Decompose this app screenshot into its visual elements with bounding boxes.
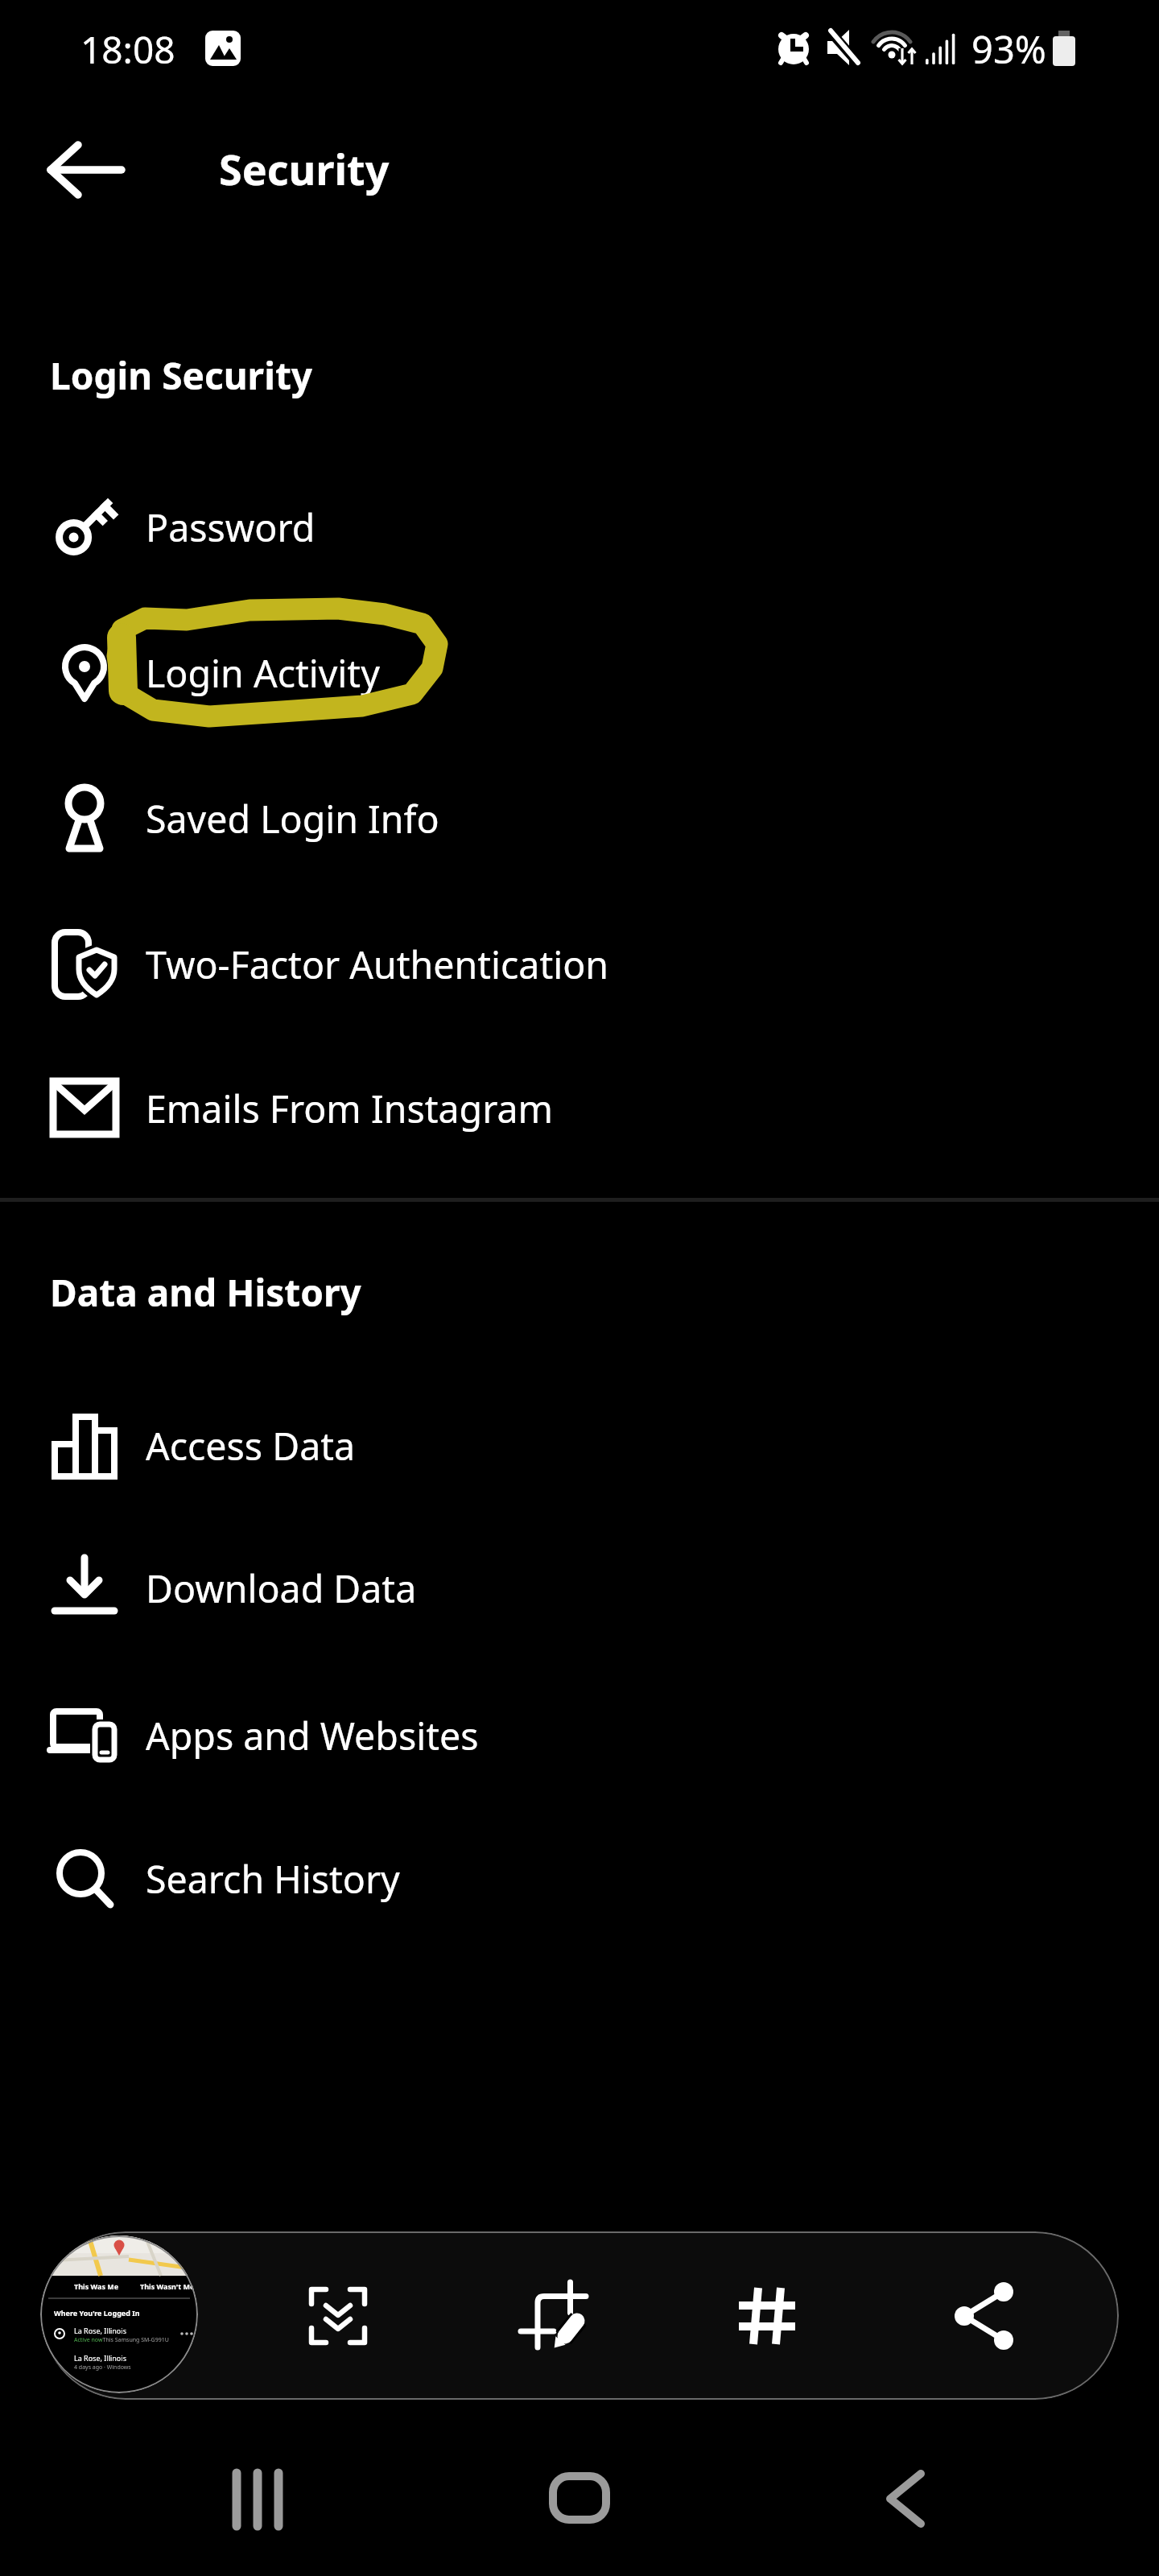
staticText: Saved Login Info (146, 793, 439, 844)
button[interactable]: Login Activity (0, 628, 1159, 716)
button[interactable] (523, 2447, 636, 2550)
staticText: This Was Me (74, 2281, 119, 2291)
staticText: · This Samsung SM-G991U (98, 2336, 169, 2344)
staticText: Apps and Websites (146, 1710, 479, 1761)
button[interactable]: Password (0, 482, 1159, 571)
staticText: Security (219, 140, 390, 197)
button[interactable] (517, 2278, 589, 2351)
staticText: Login Security (50, 350, 313, 401)
staticText: This Wasn't Me (140, 2281, 195, 2291)
button[interactable]: Emails From Instagram (0, 1063, 1159, 1152)
staticText: Where You're Logged In (54, 2308, 140, 2318)
button[interactable] (951, 2280, 1023, 2352)
staticText: Active now (74, 2336, 103, 2344)
button[interactable] (848, 2447, 961, 2550)
staticText: Download Data (146, 1563, 417, 1613)
staticText: Search History (146, 1853, 400, 1904)
staticText: 18:08 (80, 24, 175, 75)
button[interactable]: Apps and Websites (0, 1690, 1159, 1779)
staticText: Login Activity (146, 647, 380, 698)
button[interactable]: Saved Login Info (0, 774, 1159, 862)
staticText: La Rose, Illinois (74, 2353, 126, 2363)
staticText: Data and History (50, 1267, 361, 1318)
staticText: Access Data (146, 1420, 356, 1471)
button[interactable] (731, 2280, 803, 2352)
button[interactable]: Download Data (0, 1543, 1159, 1632)
button[interactable]: Access Data (0, 1401, 1159, 1489)
button[interactable] (302, 2280, 374, 2352)
staticText: Emails From Instagram (146, 1083, 553, 1133)
button[interactable] (32, 125, 145, 213)
button[interactable] (201, 2447, 314, 2550)
staticText: La Rose, Illinois (74, 2326, 126, 2335)
button[interactable]: This Was Me (40, 2235, 198, 2393)
staticText: 93% (971, 23, 1046, 75)
staticText: Two-Factor Authentication (146, 939, 609, 989)
staticText: Password (146, 502, 316, 552)
button[interactable]: Search History (0, 1834, 1159, 1922)
staticText: 4 days ago · Windows (74, 2363, 131, 2372)
button[interactable]: Two-Factor Authentication (0, 919, 1159, 1008)
